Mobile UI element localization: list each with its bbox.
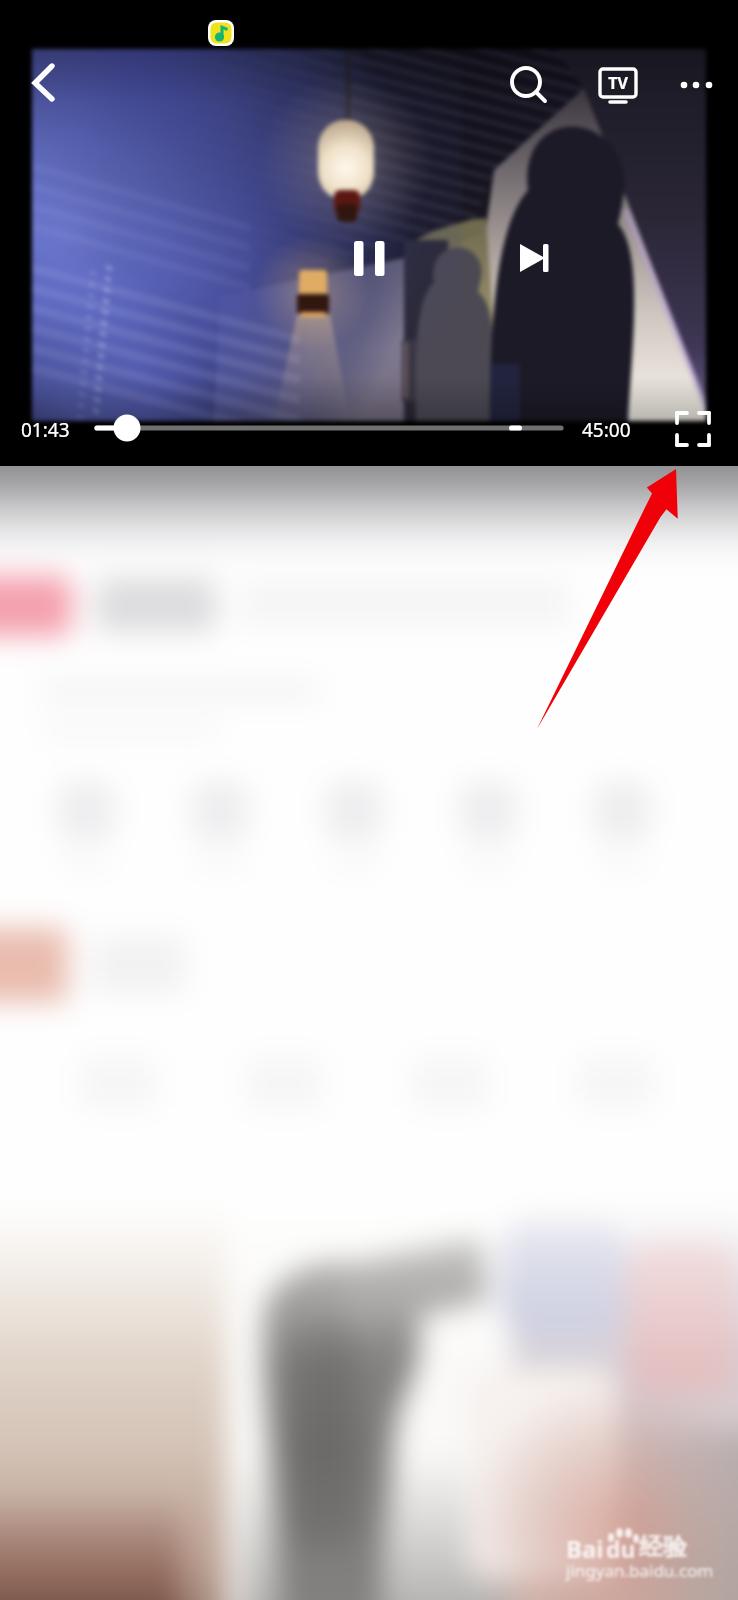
button[interactable]: Search: [503, 59, 553, 109]
button[interactable]: Fullscreen: [673, 409, 713, 449]
button[interactable]: Pause: [340, 228, 398, 286]
staticText: 经验: [639, 1532, 687, 1562]
button[interactable]: Next episode: [505, 228, 563, 286]
staticText: 01:43: [21, 417, 70, 443]
button[interactable]: Back: [16, 56, 70, 110]
staticText: jingyan.baidu.com: [566, 1559, 714, 1582]
staticText: TV: [600, 72, 636, 94]
staticText: 45:00: [582, 417, 631, 443]
button[interactable]: Cast to TV: [596, 65, 642, 107]
button[interactable]: More options: [668, 63, 720, 107]
staticText: du: [606, 1533, 636, 1564]
staticText: Bai: [566, 1532, 604, 1565]
